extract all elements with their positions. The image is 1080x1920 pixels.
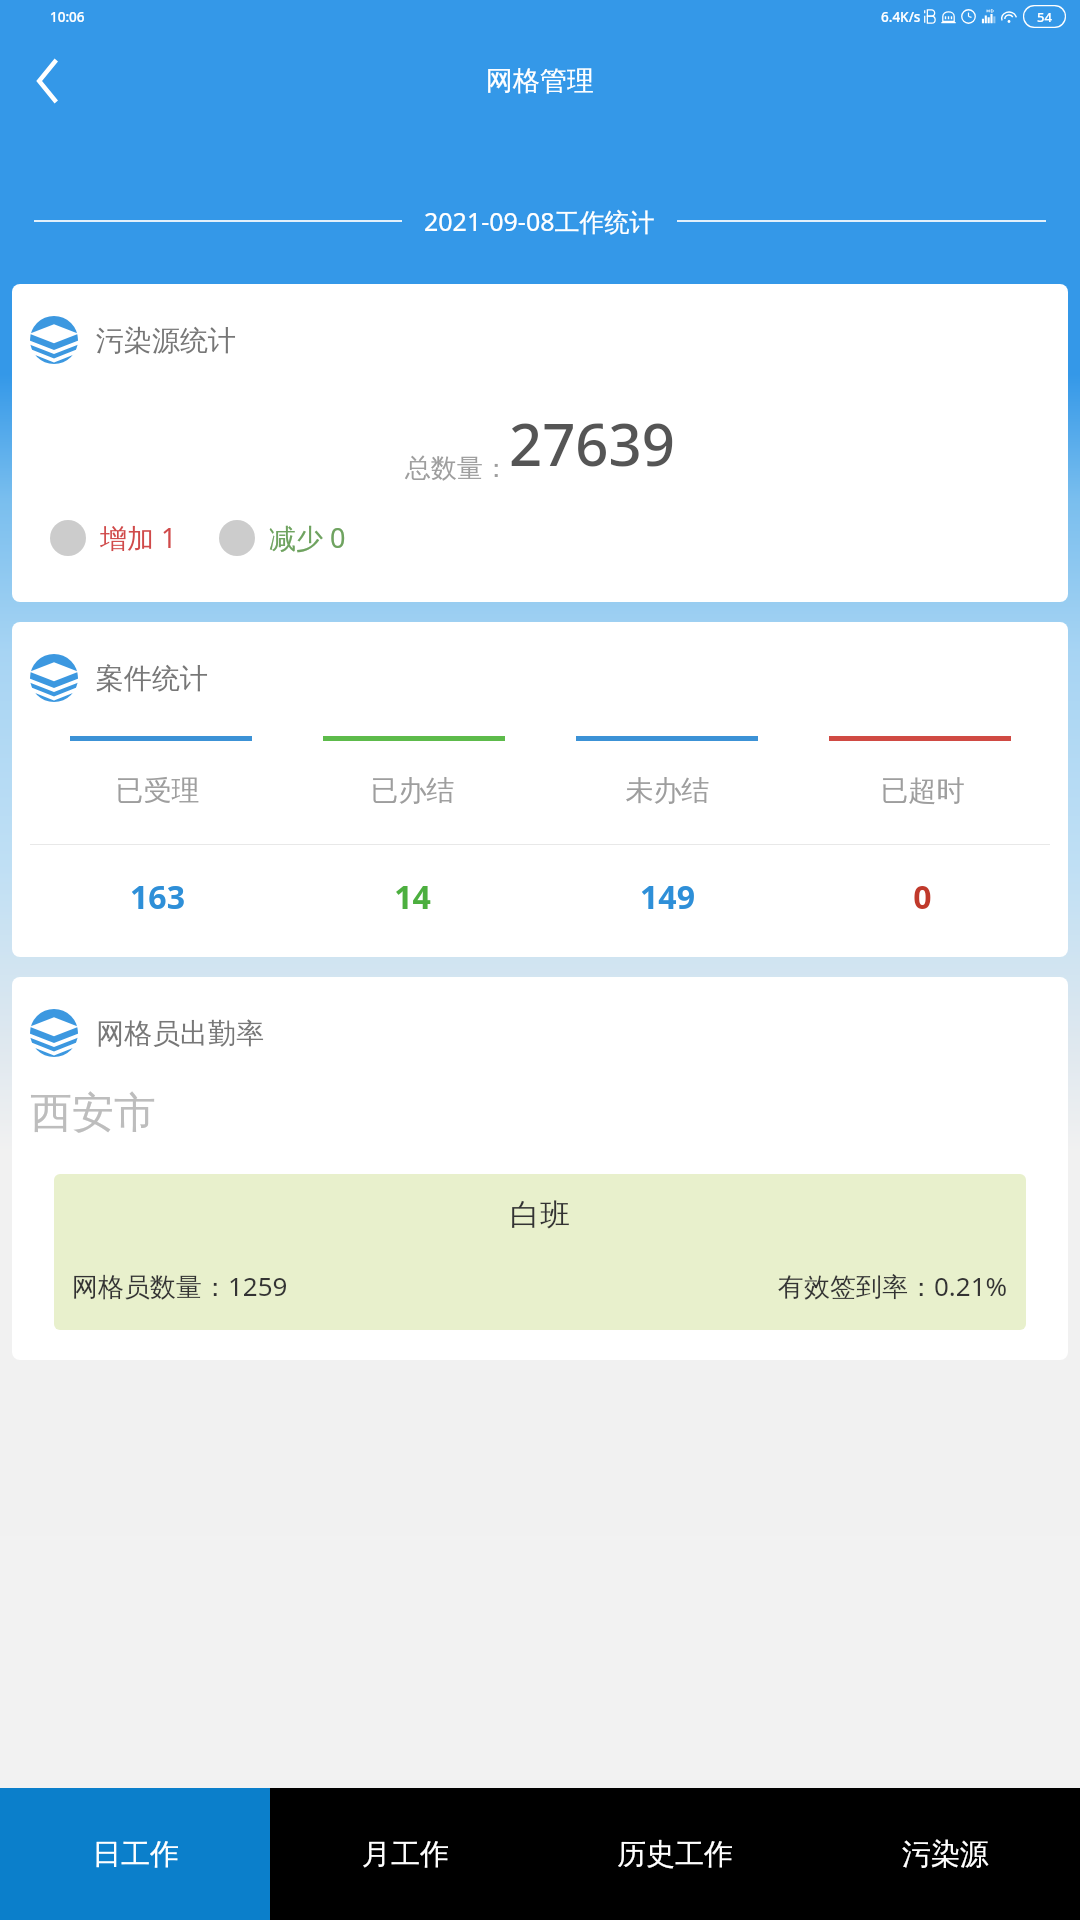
staticText: 总数量： <box>405 452 509 485</box>
staticText: 已受理 <box>30 773 285 808</box>
staticText: 减少 0 <box>269 519 346 556</box>
staticText: 月工作 <box>362 1836 449 1873</box>
staticText: 历史工作 <box>617 1836 733 1873</box>
staticText: 案件统计 <box>96 661 208 696</box>
staticText: 149 <box>540 875 795 919</box>
staticText: 有效签到率：0.21% <box>778 1268 1008 1304</box>
staticText: 西安市 <box>30 1087 156 1140</box>
staticText: 0 <box>795 875 1050 919</box>
staticText: 54 <box>1037 8 1052 26</box>
staticText: 10:06 <box>50 8 85 26</box>
staticText: 14 <box>285 875 540 919</box>
staticText: 白班 <box>54 1196 1026 1234</box>
staticText: 163 <box>30 875 285 919</box>
button[interactable]: 案件统计 <box>12 622 1068 957</box>
button[interactable]: 日工作 <box>0 1788 270 1920</box>
button[interactable]: 污染源统计 <box>12 284 1068 602</box>
staticText: 日工作 <box>92 1836 179 1873</box>
staticText: 2021-09-08工作统计 <box>424 204 655 238</box>
staticText: 网格管理 <box>486 64 594 98</box>
button[interactable]: Back <box>14 46 84 116</box>
staticText: 6.4K/s <box>881 8 921 26</box>
staticText: 已办结 <box>285 773 540 808</box>
staticText: 未办结 <box>540 773 795 808</box>
staticText: 污染源 <box>902 1836 989 1873</box>
staticText: 网格员数量：1259 <box>72 1268 778 1304</box>
button[interactable]: 网格员出勤率 <box>12 977 1068 1360</box>
button[interactable]: 月工作 <box>270 1788 540 1920</box>
button[interactable]: 历史工作 <box>540 1788 810 1920</box>
staticText: 已超时 <box>795 773 1050 808</box>
staticText: 27639 <box>509 404 675 483</box>
staticText: 增加 1 <box>100 519 177 556</box>
button[interactable]: 污染源 <box>810 1788 1080 1920</box>
staticText: 网格员出勤率 <box>96 1016 264 1051</box>
staticText: 污染源统计 <box>96 323 236 358</box>
